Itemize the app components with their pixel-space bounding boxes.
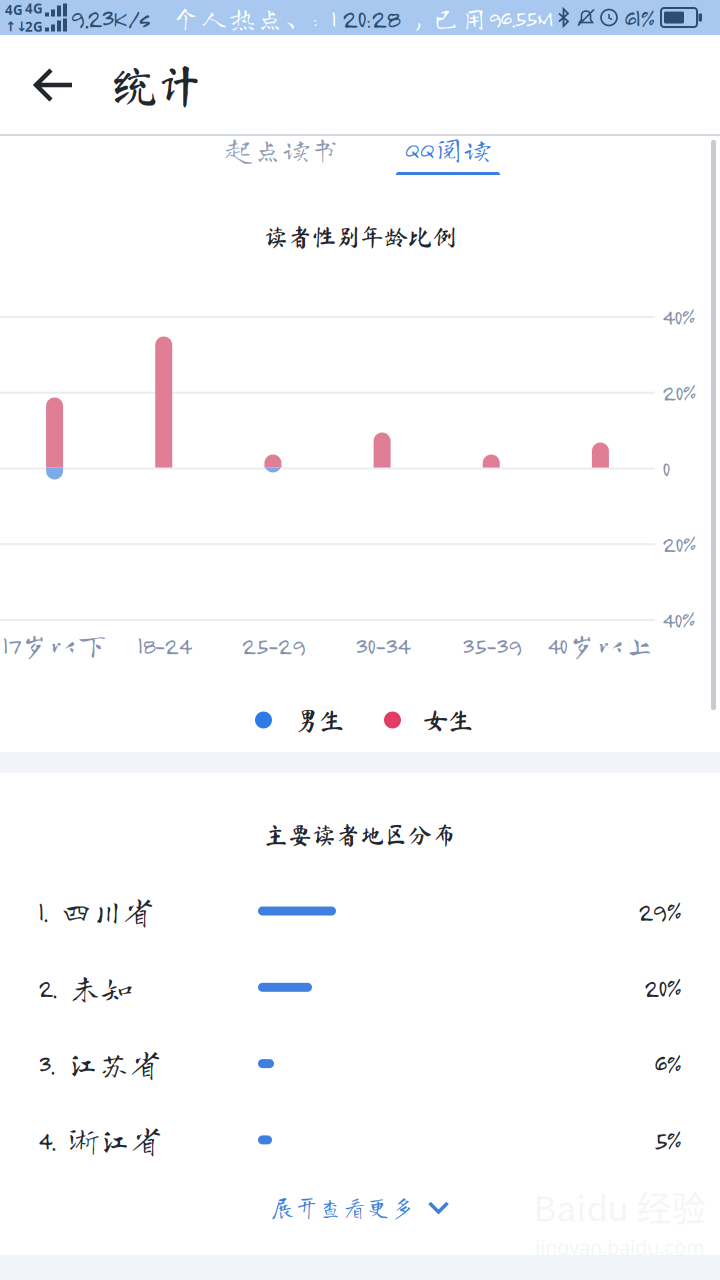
staticText: 17岁以下 <box>3 630 107 660</box>
button[interactable]: QQ阅读 <box>338 136 558 175</box>
staticText: 6% <box>654 1048 681 1079</box>
staticText: 女生 <box>423 707 473 733</box>
staticText: 20% <box>644 972 681 1003</box>
staticText: 统计 <box>112 63 202 108</box>
staticText: 4G <box>5 1 23 19</box>
staticText: Baidu 经验 <box>533 1181 706 1231</box>
staticText: 40岁以上 <box>547 630 654 660</box>
staticText: 40% <box>662 302 694 330</box>
staticText: 2. 未知 <box>38 972 132 1003</box>
staticText: 20% <box>662 378 695 406</box>
staticText: ，已用96.55M <box>404 3 552 31</box>
staticText: 5% <box>654 1125 681 1155</box>
staticText: 9.23K/s <box>70 2 150 33</box>
staticText: 20:28 <box>342 1 400 33</box>
button[interactable]: 展开查看更多 <box>0 1177 720 1237</box>
staticText: 个人热点、: 1 <box>172 3 336 31</box>
staticText: 起点读书 <box>224 134 340 164</box>
staticText: 读者性别年龄比例 <box>264 225 456 249</box>
button[interactable]: 起点读书 <box>172 136 392 175</box>
staticText: 35-39 <box>462 630 521 660</box>
staticText: 20% <box>662 529 695 557</box>
staticText: 4G <box>25 0 43 17</box>
staticText: 2G <box>25 17 43 36</box>
staticText: 男生 <box>294 707 344 733</box>
staticText: 18-24 <box>137 630 190 660</box>
staticText: 25-29 <box>241 630 304 660</box>
staticText: 3. 江苏省 <box>38 1048 161 1079</box>
staticText: 主要读者地区分布 <box>264 823 456 847</box>
staticText: QQ阅读 <box>404 134 492 164</box>
staticText: 61% <box>624 3 654 32</box>
staticText: 30-34 <box>355 630 409 660</box>
staticText: 1. 四川省 <box>38 896 154 926</box>
staticText: 29% <box>638 896 681 926</box>
staticText: 40% <box>662 605 694 633</box>
staticText: 0 <box>662 453 669 481</box>
staticText: ↑↓ <box>5 19 27 34</box>
staticText: 展开查看更多 <box>270 1195 414 1219</box>
staticText: jingyan.baidu.com <box>535 1233 705 1261</box>
button[interactable]: Back <box>0 35 104 136</box>
staticText: 4. 浙江省 <box>38 1125 162 1155</box>
